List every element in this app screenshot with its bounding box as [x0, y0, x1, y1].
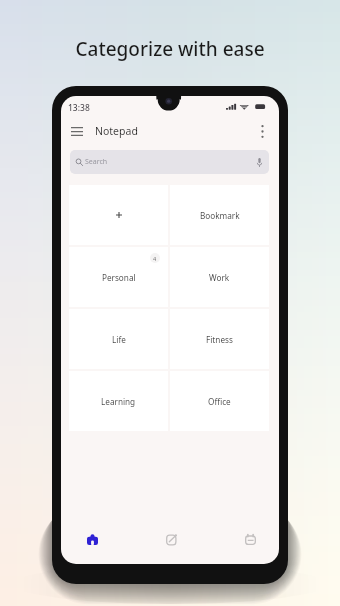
button[interactable]: Office — [170, 371, 269, 431]
button[interactable]: Personal — [69, 247, 168, 307]
staticText: Life — [112, 334, 126, 345]
button[interactable]: 4 — [150, 253, 160, 263]
button[interactable]: Life — [69, 309, 168, 369]
staticText: 13:38 — [68, 102, 90, 114]
staticText: Notepad — [95, 124, 138, 138]
staticText: Learning — [101, 396, 136, 407]
staticText: Fitness — [206, 334, 233, 345]
staticText: Categorize with ease — [0, 36, 340, 62]
staticText: Bookmark — [200, 210, 240, 221]
button[interactable]: Menu — [66, 120, 88, 142]
staticText: Search — [85, 157, 108, 167]
staticText: Office — [208, 396, 231, 407]
button[interactable]: Bookmark — [170, 185, 269, 245]
button[interactable]: Search — [70, 150, 269, 174]
button[interactable]: Voice search — [253, 156, 265, 168]
button[interactable]: More options — [251, 120, 273, 142]
button[interactable]: Calendar — [235, 524, 265, 554]
staticText: 4 — [153, 255, 157, 262]
staticText: Personal — [102, 272, 136, 283]
button[interactable] — [69, 185, 168, 245]
button[interactable]: Compose — [156, 524, 186, 554]
button[interactable]: Work — [170, 247, 269, 307]
button[interactable]: Learning — [69, 371, 168, 431]
staticText: Work — [209, 272, 230, 283]
button[interactable]: Notes — [77, 524, 107, 554]
button[interactable]: Fitness — [170, 309, 269, 369]
